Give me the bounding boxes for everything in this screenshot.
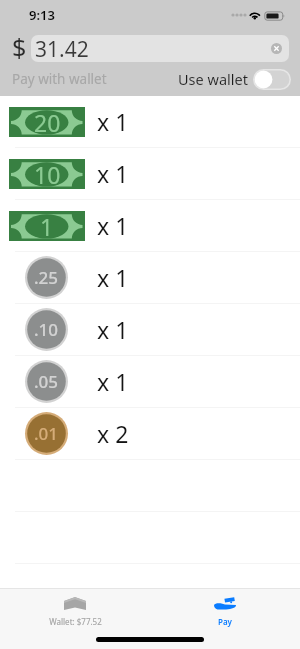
button[interactable]: Wallet tab	[0, 589, 150, 649]
staticText: Pay	[218, 616, 232, 627]
staticText: .05	[34, 370, 59, 393]
staticText: 10	[34, 159, 61, 188]
staticText: x 1	[97, 262, 129, 293]
button[interactable]: Pay tab	[150, 589, 300, 649]
staticText: .01	[34, 422, 59, 445]
staticText: x 1	[97, 106, 129, 137]
staticText: .10	[34, 318, 59, 341]
button[interactable]: 1	[0, 200, 300, 252]
staticText: Wallet: $77.52	[49, 616, 102, 627]
staticText: Use wallet	[178, 69, 248, 89]
button[interactable]: 10	[0, 148, 300, 200]
staticText: x 1	[97, 210, 129, 241]
button[interactable]: .25	[0, 252, 300, 304]
staticText: $	[12, 30, 27, 64]
staticText: x 1	[97, 314, 129, 345]
staticText: x 1	[97, 366, 129, 397]
button[interactable]: .01	[0, 408, 300, 460]
button[interactable]: .10	[0, 304, 300, 356]
staticText: 31.42	[35, 35, 89, 61]
button[interactable]: 20	[0, 96, 300, 148]
staticText: 9:13	[29, 6, 55, 24]
staticText: x 2	[97, 418, 129, 449]
staticText: 1	[40, 211, 54, 240]
button[interactable]: Clear	[271, 43, 282, 54]
staticText: 20	[34, 107, 61, 136]
button[interactable]: 31.42	[31, 35, 289, 62]
staticText: .25	[34, 266, 59, 289]
button[interactable]: .05	[0, 356, 300, 408]
staticText: x 1	[97, 158, 129, 189]
staticText: Pay with wallet	[12, 70, 107, 88]
button[interactable]: Use wallet toggle	[253, 69, 291, 90]
